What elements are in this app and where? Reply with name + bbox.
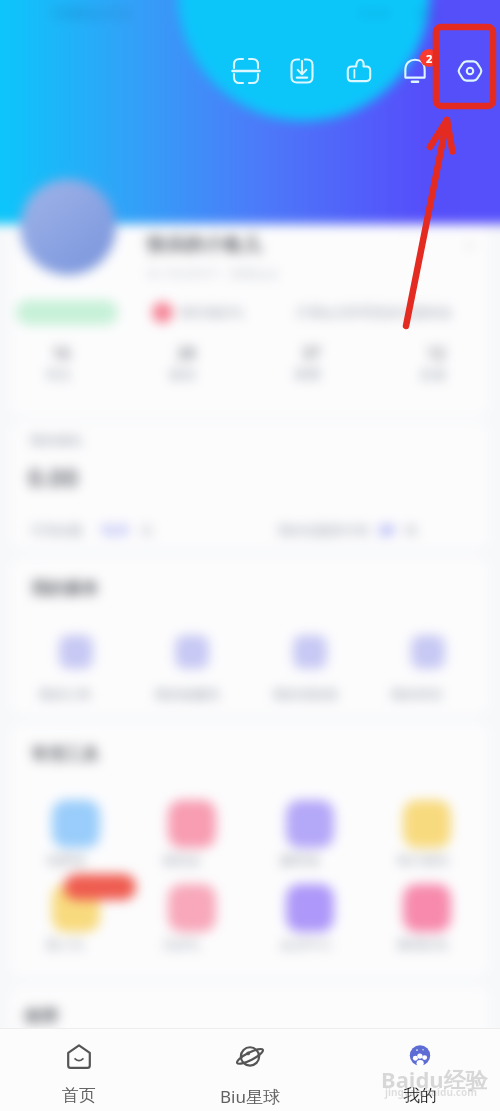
staticText: 我的服务 [31,578,99,599]
staticText: Biu星球 [220,1085,280,1108]
staticText: 85% [416,4,442,22]
staticText: 足迹 [420,366,446,382]
button[interactable]: Likes [340,52,378,90]
staticText: 领现金 [162,852,201,868]
staticText: 邀请好友 [397,936,449,952]
staticText: 16 [52,342,71,364]
staticText: 会员中心 [280,936,332,952]
staticText: 兑好礼 [162,936,201,952]
staticText: 每日签到 [397,852,449,868]
staticText: 12 [427,342,446,364]
staticText: 37 [302,342,321,364]
staticText: 0.00 [28,460,78,494]
staticText: 28 [378,520,395,539]
staticText: 我的 [403,1085,437,1106]
staticText: jingyan.baidu.com [385,1085,477,1099]
button[interactable]: 我的 [365,1042,475,1108]
button[interactable]: Downloads [283,52,321,90]
button[interactable]: Notifications [396,52,434,90]
staticText: 签到领好礼 [180,304,245,320]
staticText: 免费领 [46,852,85,868]
staticText: 28 [177,342,196,364]
staticText: 首页 [62,1085,96,1106]
staticText: 我的评价 [391,686,443,702]
staticText: 推荐 [24,1006,58,1027]
staticText: 快乐的小鱼儿 [147,233,261,257]
staticText: 我的优惠券共有 [278,522,369,538]
staticText: 可用余额 [30,522,82,538]
staticText: 关注 [45,366,71,382]
staticText: 我的收藏夹 [155,686,220,702]
staticText: 我的订单 [39,686,91,702]
button[interactable]: Biu星球 [195,1042,305,1108]
staticText: 我的钱包 [30,432,82,448]
staticText: Baidu经验 [381,1064,488,1094]
staticText: 获赞 [295,366,321,382]
staticText: 我的浏览器 [273,686,338,702]
button[interactable]: Settings [451,52,489,90]
staticText: 2 [426,51,433,66]
staticText: 常用工具 [31,744,99,765]
staticText: 粉丝 [170,366,196,382]
button[interactable]: 首页 [24,1042,134,1108]
staticText: 开通会员享受更多优惠权益 [296,304,452,320]
staticText: 新人礼 [46,936,85,952]
staticText: 赚零钱 [280,852,319,868]
staticText: 中国移动 ıll 令 [50,4,132,22]
staticText: 12.5 [100,520,128,539]
button[interactable]: Scan code [227,52,265,90]
